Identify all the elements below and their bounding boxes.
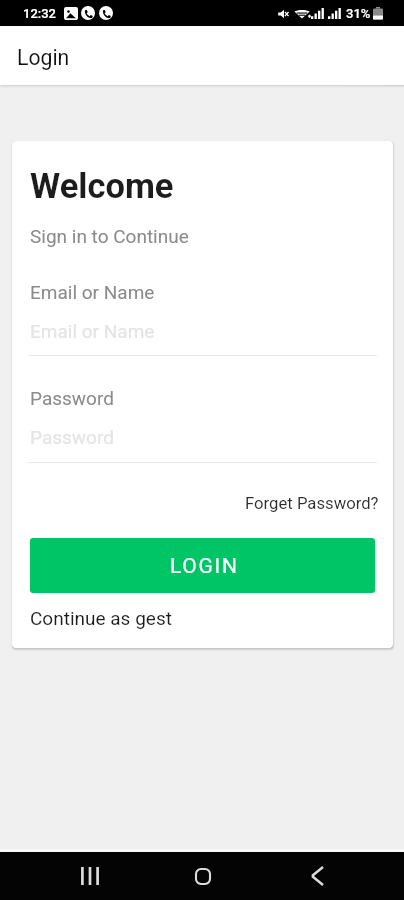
button[interactable]: LOGIN [30, 538, 375, 593]
staticText: Login [17, 45, 70, 70]
staticText: 12:32 [23, 6, 56, 21]
staticText: Email or Name [30, 281, 155, 303]
staticText: Sign in to Continue [30, 225, 189, 247]
staticText: 31% [346, 6, 371, 21]
staticText: Password [30, 426, 114, 448]
button[interactable]: Recent apps [60, 853, 120, 899]
staticText: LOGIN [170, 554, 239, 579]
staticText: Welcome [30, 166, 174, 206]
staticText: Email or Name [30, 320, 155, 342]
button[interactable]: Continue as gest [30, 607, 172, 629]
button[interactable]: Home [173, 853, 233, 899]
staticText: Continue as gest [30, 607, 172, 629]
staticText: Password [30, 387, 114, 409]
button[interactable]: Back [287, 853, 347, 899]
staticText: Forget Password? [245, 494, 379, 514]
button[interactable]: Forget Password? [245, 494, 379, 514]
